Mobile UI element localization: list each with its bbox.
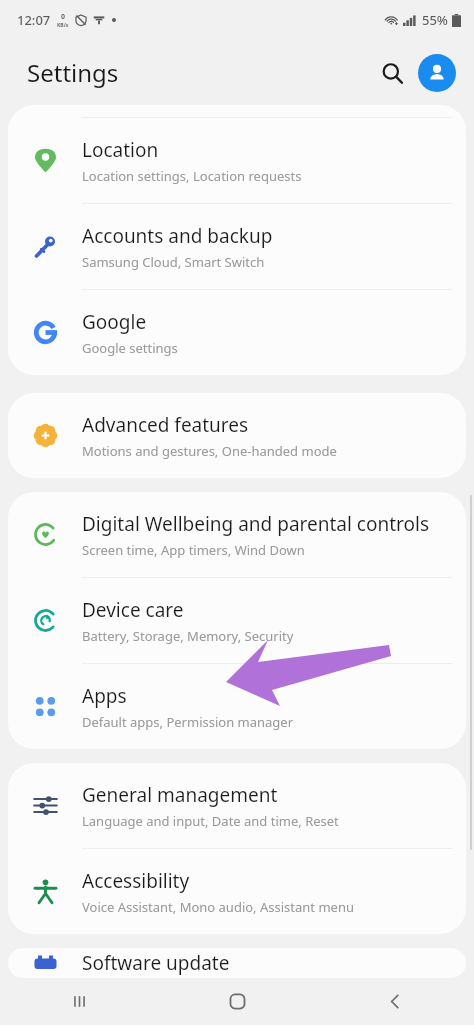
staticText: Advanced features [82,412,249,438]
button[interactable]: Location [8,118,466,203]
staticText: Samsung Cloud, Smart Switch [82,253,265,271]
staticText: General management [82,782,278,808]
staticText: 12:07 [17,11,51,29]
staticText: Settings [27,56,119,89]
button[interactable]: Home [158,978,316,1025]
staticText: 0 [61,12,66,22]
button[interactable]: Accounts and backup [8,204,466,289]
staticText: Default apps, Permission manager [82,713,294,731]
staticText: Accounts and backup [82,223,273,249]
button[interactable]: Account [418,54,456,92]
staticText: Digital Wellbeing and parental controls [82,511,430,537]
button[interactable]: Software update [8,948,466,978]
staticText: Motions and gestures, One-handed mode [82,442,337,460]
staticText: Google settings [82,339,178,357]
staticText: Language and input, Date and time, Reset [82,812,339,830]
staticText: Google [82,309,147,335]
staticText: Accessibility [82,868,190,894]
staticText: Device care [82,597,184,623]
staticText: Apps [82,683,127,709]
staticText: Location settings, Location requests [82,167,302,185]
button[interactable]: Google [8,290,466,375]
button[interactable]: Accessibility [8,849,466,934]
staticText: Battery, Storage, Memory, Security [82,627,294,645]
button[interactable]: Advanced features [8,393,466,478]
button[interactable]: Search [370,51,414,95]
staticText: Location [82,137,159,163]
staticText: Software update [82,950,230,976]
staticText: Voice Assistant, Mono audio, Assistant m… [82,898,354,916]
staticText: 55% [422,11,448,29]
button[interactable]: General management [8,763,466,848]
staticText: Screen time, App timers, Wind Down [82,541,305,559]
staticText: KB/s [57,22,69,29]
button[interactable]: Recent apps [0,978,158,1025]
button[interactable]: Apps [8,664,466,749]
button[interactable]: Back [316,978,474,1025]
button[interactable]: Device care [8,578,466,663]
button[interactable]: Digital Wellbeing and parental controls [8,492,466,577]
